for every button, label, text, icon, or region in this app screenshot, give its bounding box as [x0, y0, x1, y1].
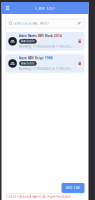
staticText: ADD CAR — [66, 186, 80, 190]
staticText: CAR LIST — [35, 5, 55, 11]
button[interactable]: Search by Car make, Model — [5, 19, 84, 28]
button[interactable]: Menu — [1, 6, 9, 10]
staticText: © 2020 Car Rental System. All Rights Res… — [5, 195, 71, 198]
staticText: Aston Martin DB9 Black 2014 — [19, 34, 62, 38]
staticText: Available — [21, 62, 35, 65]
staticText: Available — [21, 39, 35, 43]
button[interactable]: Aston Martin DB9 Black 2014 — [5, 32, 84, 51]
staticText: Booking: 11/05/2020 to 17/05/2020 — [19, 67, 73, 70]
staticText: Booking: 11/05/2020 to 17/05/2020 — [19, 45, 73, 48]
staticText: Acura MDX Beige 1988 — [19, 56, 53, 60]
staticText: Search by Car make, Model — [14, 22, 49, 25]
button[interactable]: Acura MDX Beige 1988 — [5, 54, 84, 73]
button[interactable]: ADD CAR — [61, 183, 84, 193]
